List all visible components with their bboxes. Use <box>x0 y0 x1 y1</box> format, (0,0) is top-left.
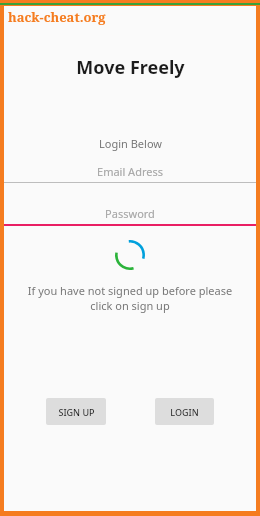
staticText: SIGN UP <box>58 406 95 418</box>
staticText: Login Below <box>99 136 162 151</box>
staticText: hack-cheat.org <box>8 8 106 26</box>
staticText: If you have not signed up before please … <box>20 283 240 313</box>
button[interactable]: LOGIN <box>155 398 214 425</box>
staticText: Email Adress <box>97 164 163 179</box>
button[interactable]: Password input <box>4 203 256 226</box>
button[interactable]: Email Adress input <box>4 161 256 183</box>
staticText: LOGIN <box>170 406 199 418</box>
staticText: Password <box>105 206 155 221</box>
button[interactable]: SIGN UP <box>46 398 106 425</box>
staticText: Move Freely <box>76 55 185 80</box>
